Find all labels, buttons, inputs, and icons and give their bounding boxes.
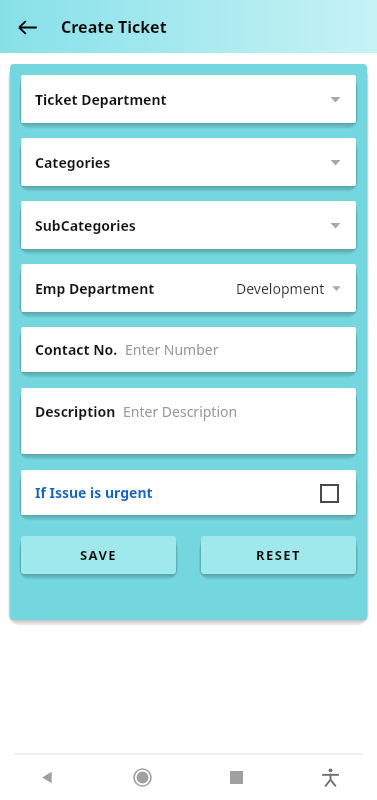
staticText: Description	[35, 402, 116, 421]
staticText: Emp Department	[35, 279, 155, 298]
staticText: SubCategories	[35, 216, 136, 235]
staticText: RESET	[256, 546, 301, 564]
button[interactable]: Categories	[21, 138, 356, 186]
button[interactable]: SAVE	[21, 536, 176, 574]
button[interactable]: Contact No.	[21, 327, 356, 372]
button[interactable]: SubCategories	[21, 201, 356, 249]
button[interactable]: Urgent checkbox	[316, 480, 342, 506]
staticText: Enter Number	[125, 340, 219, 359]
staticText: Enter Description	[123, 402, 238, 421]
staticText: If Issue is urgent	[35, 483, 153, 502]
button[interactable]: Back	[0, 754, 95, 800]
button[interactable]: Accessibility	[283, 754, 377, 800]
staticText: Development	[236, 279, 325, 298]
button[interactable]: Ticket Department	[21, 75, 356, 123]
button[interactable]: Back	[10, 10, 44, 44]
staticText: Ticket Department	[35, 90, 167, 109]
staticText: Categories	[35, 153, 111, 172]
button[interactable]: Recent apps	[189, 754, 283, 800]
staticText: Contact No.	[35, 340, 118, 359]
button[interactable]: Description	[21, 388, 356, 454]
button[interactable]: Emp Department	[21, 264, 356, 312]
button[interactable]: If Issue is urgent	[21, 470, 356, 515]
staticText: Create Ticket	[61, 16, 167, 38]
button[interactable]: RESET	[201, 536, 356, 574]
button[interactable]: Home	[95, 754, 189, 800]
staticText: SAVE	[80, 546, 117, 564]
